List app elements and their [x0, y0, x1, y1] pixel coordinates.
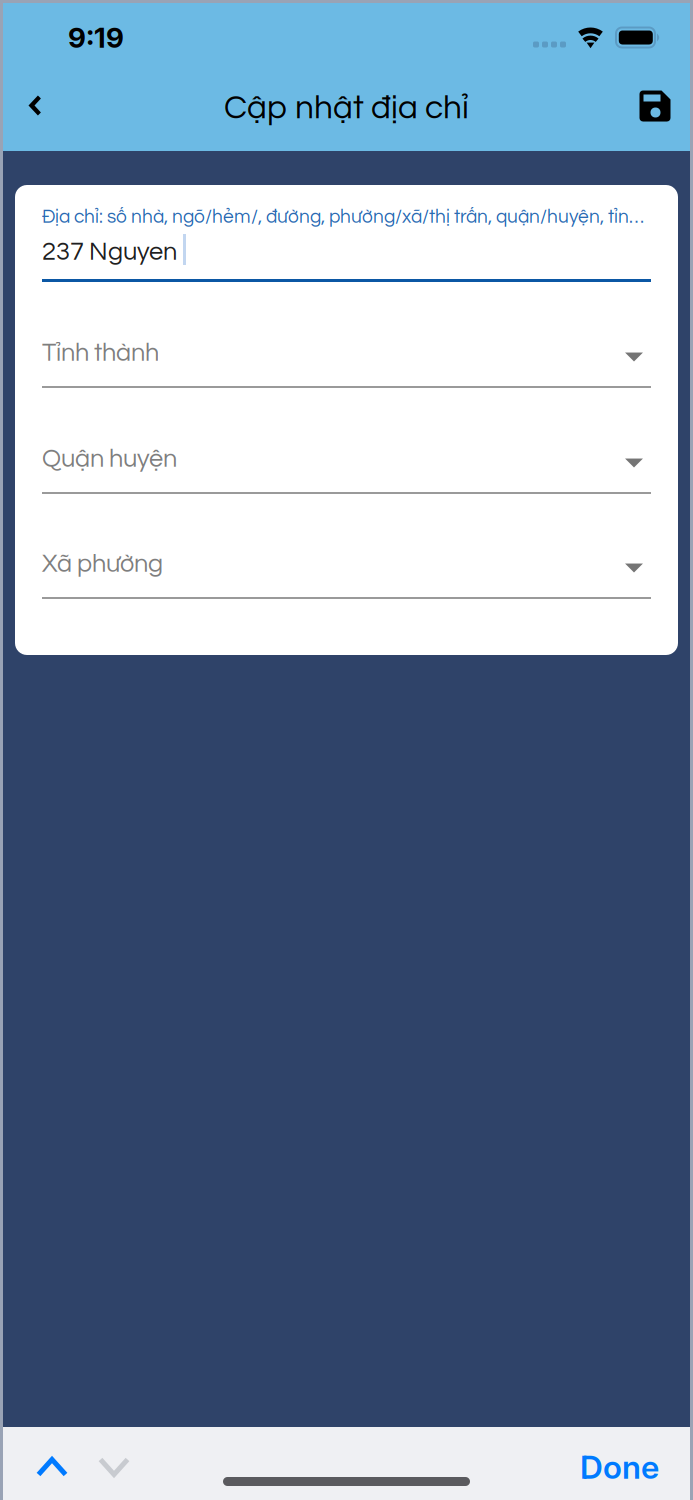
- staticText: 237 Nguyen: [42, 239, 177, 265]
- staticText: Tỉnh thành: [42, 340, 159, 366]
- button[interactable]: Quận huyện: [42, 422, 651, 494]
- staticText: Cập nhật địa chỉ: [224, 91, 469, 125]
- button[interactable]: Save: [626, 75, 684, 137]
- button[interactable]: Back: [6, 75, 64, 137]
- staticText: Địa chỉ: số nhà, ngõ/hẻm/, đường, phường…: [42, 207, 651, 227]
- staticText: 9:19: [68, 21, 124, 54]
- button[interactable]: Tỉnh thành: [42, 316, 651, 388]
- button[interactable]: Previous field: [21, 1444, 83, 1490]
- button[interactable]: Xã phường: [42, 527, 651, 599]
- button[interactable]: Next field: [83, 1444, 145, 1490]
- button[interactable]: Done: [563, 1444, 676, 1490]
- staticText: Done: [580, 1448, 659, 1486]
- staticText: Xã phường: [42, 551, 163, 577]
- staticText: Quận huyện: [42, 446, 177, 472]
